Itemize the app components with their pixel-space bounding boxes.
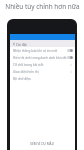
staticText: Hiển thị ảnh trong danh sách bài viết bbox=[13, 56, 67, 60]
button[interactable]: Bộ nhớ đệm bbox=[10, 75, 75, 82]
button[interactable]: Cỡ chữ trong bài viết bbox=[10, 61, 75, 68]
staticText: Cài đặt bbox=[16, 42, 27, 46]
staticText: XEM VÍ DỤ MẪU bbox=[30, 142, 54, 146]
staticText: Giao diện hiển thị bbox=[13, 70, 69, 74]
staticText: Bộ nhớ đệm bbox=[13, 77, 69, 81]
staticText: Nhận thông báo khi có tin mới bbox=[13, 49, 67, 53]
staticText: Nhiều tùy chỉnh hơn nữa bbox=[5, 2, 80, 11]
other: Back bbox=[12, 42, 16, 46]
staticText: Cỡ chữ trong bài viết bbox=[13, 63, 69, 67]
button[interactable]: Back bbox=[10, 40, 75, 47]
button[interactable]: Hiển thị ảnh trong danh sách bài viết bbox=[10, 54, 75, 61]
button[interactable]: Giao diện hiển thị bbox=[10, 68, 75, 75]
button[interactable]: Nhận thông báo khi có tin mới bbox=[10, 47, 75, 54]
